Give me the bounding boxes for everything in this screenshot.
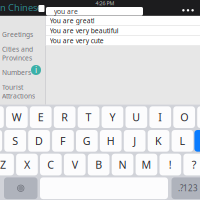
- staticText: N: [118, 157, 126, 172]
- button[interactable]: [40, 177, 168, 199]
- button[interactable]: More options: [180, 8, 196, 12]
- staticText: You are very beautiful: [50, 26, 119, 35]
- button[interactable]: G: [76, 130, 98, 152]
- staticText: You are great!: [50, 16, 95, 25]
- button[interactable]: B: [88, 154, 109, 175]
- staticText: L: [179, 134, 185, 148]
- staticText: K: [155, 134, 162, 148]
- staticText: I: [158, 110, 162, 124]
- staticText: F: [60, 134, 66, 148]
- staticText: T: [85, 110, 91, 124]
- button[interactable]: M: [136, 154, 157, 175]
- button[interactable]: E: [30, 106, 52, 128]
- button[interactable]: K: [148, 130, 169, 152]
- button[interactable]: .?123: [171, 177, 200, 199]
- button[interactable]: n Chinese: [0, 3, 45, 12]
- button[interactable]: Numbers: [0, 63, 45, 82]
- staticText: Cities and Provinces: [2, 45, 33, 62]
- button[interactable]: You are great!: [46, 16, 200, 26]
- staticText: Z: [0, 157, 6, 172]
- button[interactable]: L: [172, 130, 193, 152]
- staticText: i: [35, 65, 37, 75]
- staticText: C: [47, 157, 54, 172]
- staticText: S: [12, 134, 18, 148]
- button[interactable]: R: [54, 106, 75, 128]
- button[interactable]: O: [173, 106, 195, 128]
- staticText: X: [24, 157, 30, 172]
- button[interactable]: A: [0, 130, 2, 152]
- staticText: E: [38, 110, 44, 124]
- button[interactable]: you are: [46, 7, 143, 16]
- button[interactable]: Cities and Provinces: [0, 44, 45, 63]
- button[interactable]: Tourist Attractions: [0, 82, 45, 101]
- staticText: V: [72, 157, 78, 172]
- button[interactable]: Q: [0, 106, 4, 128]
- button[interactable]: N: [112, 154, 133, 175]
- staticText: R: [61, 110, 68, 124]
- button[interactable]: !: [159, 154, 181, 175]
- button[interactable]: X: [16, 154, 38, 175]
- staticText: U: [132, 110, 140, 124]
- button[interactable]: J: [124, 130, 145, 152]
- button[interactable]: D: [28, 130, 50, 152]
- button[interactable]: [194, 130, 200, 152]
- button[interactable]: Y: [102, 106, 123, 128]
- button[interactable]: ?: [183, 154, 200, 175]
- button[interactable]: You are very cute: [46, 36, 200, 46]
- staticText: J: [133, 134, 136, 148]
- button[interactable]: T: [78, 106, 99, 128]
- button[interactable]: S: [4, 130, 26, 152]
- staticText: ?: [192, 157, 197, 172]
- staticText: Numbers: [2, 68, 31, 77]
- staticText: Tourist Attractions: [2, 83, 35, 100]
- staticText: H: [107, 134, 115, 148]
- button[interactable]: P: [197, 106, 200, 128]
- staticText: n Chinese: [0, 1, 42, 14]
- staticText: Y: [109, 110, 115, 124]
- staticText: W: [12, 110, 22, 124]
- staticText: You are very cute: [50, 36, 104, 45]
- button[interactable]: Z: [0, 154, 14, 175]
- staticText: M: [141, 157, 151, 172]
- staticText: G: [83, 134, 91, 148]
- button[interactable]: App icon: [38, 5, 44, 12]
- button[interactable]: You are very beautiful: [46, 26, 200, 36]
- staticText: B: [95, 157, 102, 172]
- button[interactable]: Info: [31, 65, 41, 75]
- staticText: Greetings: [2, 30, 33, 39]
- button[interactable]: V: [64, 154, 86, 175]
- staticText: you are: [54, 7, 78, 16]
- staticText: .?123: [178, 183, 198, 193]
- staticText: !: [169, 157, 172, 172]
- button[interactable]: C: [40, 154, 62, 175]
- staticText: O: [180, 110, 188, 124]
- button[interactable]: F: [52, 130, 74, 152]
- button[interactable]: H: [100, 130, 122, 152]
- button[interactable]: U: [125, 106, 147, 128]
- button[interactable]: Switch keyboard: [4, 177, 37, 199]
- button[interactable]: Greetings: [0, 25, 45, 44]
- staticText: D: [35, 134, 43, 148]
- button[interactable]: I: [149, 106, 171, 128]
- staticText: 4:26 PM: [95, 0, 114, 7]
- button[interactable]: W: [6, 106, 28, 128]
